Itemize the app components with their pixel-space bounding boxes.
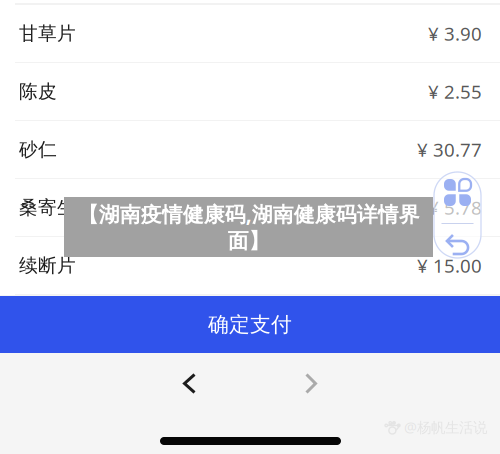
staticText: ¥ 30.77 [417, 137, 482, 162]
staticText: 砂仁 [19, 138, 57, 161]
button[interactable]: Forward [295, 363, 327, 404]
staticText: 续断片 [19, 254, 76, 277]
button[interactable]: 确定支付 [0, 296, 500, 353]
staticText: ¥ 5.78 [428, 195, 482, 220]
staticText: 确定支付 [208, 311, 292, 338]
staticText: ¥ 3.90 [428, 21, 482, 46]
staticText: @杨帆生活说 [404, 417, 487, 437]
button[interactable]: Assistive menu [434, 172, 481, 258]
staticText: 桑寄生 [19, 196, 76, 219]
button[interactable]: 砂仁 [0, 121, 500, 179]
staticText: 【湖南疫情健康码,湖南健康码详情界面】 [77, 200, 419, 254]
button[interactable]: 桑寄生 [0, 179, 500, 237]
staticText: 甘草片 [19, 22, 76, 45]
button[interactable]: 陈皮 [0, 63, 500, 121]
staticText: 陈皮 [19, 80, 57, 103]
button[interactable]: Back [173, 363, 206, 404]
button[interactable]: 续断片 [0, 237, 500, 295]
staticText: ¥ 15.00 [417, 253, 482, 278]
button[interactable]: 甘草片 [0, 5, 500, 63]
staticText: ¥ 2.55 [428, 79, 482, 104]
